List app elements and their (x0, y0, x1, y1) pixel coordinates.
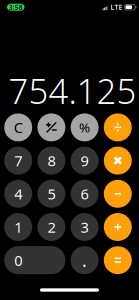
staticText: 3 (81, 217, 89, 237)
button[interactable]: 7 (4, 147, 32, 175)
button[interactable]: C (4, 113, 32, 141)
staticText: 2 (47, 217, 55, 237)
button[interactable]: Equals (104, 246, 132, 274)
button[interactable]: % (71, 113, 99, 141)
button[interactable]: Plus (104, 213, 132, 241)
button[interactable]: 9 (71, 147, 99, 175)
staticText: 9 (81, 151, 89, 170)
staticText: % (79, 118, 90, 136)
staticText: 3:58 (9, 3, 23, 12)
button[interactable]: Divide (104, 113, 132, 141)
staticText: C (14, 118, 23, 137)
staticText: 8 (47, 151, 55, 170)
button[interactable]: Minus (104, 180, 132, 208)
button[interactable]: 6 (71, 180, 99, 208)
button[interactable]: Plus Minus (37, 113, 65, 141)
staticText: 1 (14, 217, 22, 237)
button[interactable]: 2 (37, 213, 65, 241)
button[interactable]: 0 (4, 246, 65, 274)
button[interactable]: Multiply (104, 147, 132, 175)
staticText: 754.125 (8, 68, 136, 114)
staticText: 7 (14, 151, 22, 170)
button[interactable]: 5 (37, 180, 65, 208)
button[interactable]: 4 (4, 180, 32, 208)
staticText: . (82, 249, 87, 272)
button[interactable]: . (71, 246, 99, 274)
staticText: 6 (81, 184, 89, 204)
staticText: LTE (110, 3, 122, 12)
button[interactable]: 3 (71, 213, 99, 241)
staticText: 5 (47, 184, 55, 204)
staticText: 0 (14, 250, 22, 270)
staticText: 4 (14, 184, 22, 204)
button[interactable]: 8 (37, 147, 65, 175)
button[interactable]: 1 (4, 213, 32, 241)
